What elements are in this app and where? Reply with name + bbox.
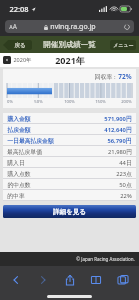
- staticText: 412,640円: [104, 126, 132, 134]
- staticText: 200%: [121, 99, 132, 105]
- button[interactable]: 払戻金額: [3, 124, 136, 135]
- button[interactable]: メニュー: [110, 40, 136, 50]
- staticText: 50点: [119, 181, 132, 189]
- staticText: 56,790円: [107, 137, 132, 145]
- staticText: 22:08: [9, 4, 29, 14]
- staticText: 的中点数: [7, 181, 31, 188]
- staticText: 571,900円: [104, 115, 132, 123]
- staticText: 2020年: [13, 56, 32, 64]
- staticText: 44日: [119, 159, 132, 167]
- staticText: 150%: [95, 99, 106, 105]
- staticText: ᴀA: [9, 22, 17, 31]
- staticText: 的中率: [7, 192, 25, 199]
- button[interactable]: Back: [6, 270, 26, 290]
- staticText: 100%: [64, 99, 75, 105]
- button[interactable]: nvinq.ra.go.jp: [5, 20, 134, 33]
- staticText: 回収率 :: [94, 73, 116, 81]
- button[interactable]: Tabs: [113, 270, 133, 290]
- staticText: 開催別成績一覧: [43, 40, 96, 49]
- staticText: 72%: [118, 72, 132, 81]
- button[interactable]: 的中率: [3, 190, 136, 201]
- button[interactable]: 購入金額: [3, 113, 136, 124]
- other: Previous year: [3, 56, 11, 64]
- button[interactable]: 最高払戻単価: [3, 146, 136, 157]
- staticText: 最高払戻単価: [7, 148, 42, 155]
- staticText: 223点: [116, 170, 132, 178]
- staticText: メニュー: [113, 42, 134, 48]
- staticText: 購入日: [7, 159, 25, 166]
- button[interactable]: 詳細を見る: [3, 205, 136, 218]
- button[interactable]: 購入日: [3, 157, 136, 168]
- staticText: 0%: [7, 99, 13, 105]
- button[interactable]: Previous year: [3, 56, 32, 64]
- staticText: 払戻金額: [7, 126, 31, 133]
- staticText: 購入金額: [7, 115, 31, 122]
- staticText: © Japan Racing Association.: [76, 256, 135, 262]
- staticText: 詳細を見る: [53, 208, 86, 216]
- button[interactable]: Forward: [33, 270, 53, 290]
- staticText: 購入点数: [7, 170, 31, 177]
- staticText: 戻る: [14, 42, 26, 49]
- staticText: 22%: [120, 192, 132, 200]
- staticText: nvinq.ra.go.jp: [50, 22, 96, 32]
- button[interactable]: 購入点数: [3, 168, 136, 179]
- button[interactable]: Reload: [123, 23, 131, 31]
- staticText: 2021年: [55, 54, 85, 66]
- button[interactable]: 一日最高払戻金額: [3, 135, 136, 146]
- staticText: 一日最高払戻金額: [7, 137, 54, 144]
- button[interactable]: 的中点数: [3, 179, 136, 190]
- staticText: 21,980円: [108, 148, 132, 156]
- button[interactable]: Bookmarks: [86, 270, 106, 290]
- staticText: 50%: [34, 99, 43, 105]
- button[interactable]: Share: [60, 270, 80, 290]
- button[interactable]: 戻る: [3, 40, 32, 50]
